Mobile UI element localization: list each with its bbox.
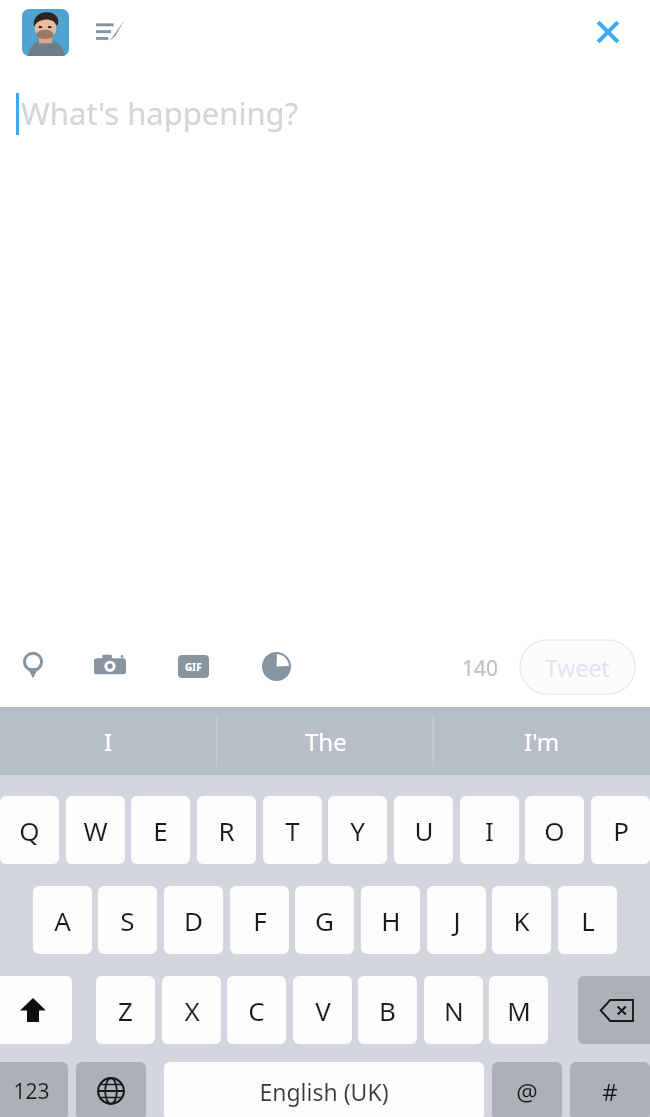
staticText: Q: [19, 813, 40, 848]
button[interactable]: R: [197, 796, 256, 864]
button[interactable]: T: [263, 796, 322, 864]
button[interactable]: I: [0, 707, 217, 775]
staticText: GIF: [185, 660, 202, 674]
button[interactable]: K: [492, 886, 551, 954]
button[interactable]: P: [591, 796, 650, 864]
button[interactable]: Close: [582, 6, 634, 58]
button[interactable]: Q: [0, 796, 59, 864]
button[interactable]: D: [164, 886, 223, 954]
button[interactable]: H: [361, 886, 420, 954]
button[interactable]: #: [570, 1062, 650, 1117]
staticText: N: [444, 993, 464, 1028]
button[interactable]: W: [66, 796, 125, 864]
staticText: W: [83, 813, 108, 848]
button[interactable]: O: [525, 796, 584, 864]
staticText: E: [153, 813, 168, 848]
button[interactable]: G: [295, 886, 354, 954]
button[interactable]: Camera: [82, 638, 138, 694]
button[interactable]: M: [489, 976, 548, 1044]
staticText: K: [513, 903, 530, 938]
staticText: G: [315, 903, 334, 938]
button[interactable]: Backspace: [578, 976, 650, 1044]
staticText: I: [485, 813, 494, 848]
staticText: 123: [13, 1077, 50, 1106]
staticText: C: [248, 993, 265, 1028]
button[interactable]: A: [33, 886, 92, 954]
button[interactable]: L: [558, 886, 617, 954]
button[interactable]: What's happening?: [21, 92, 299, 134]
button[interactable]: F: [230, 886, 289, 954]
staticText: M: [507, 993, 531, 1028]
button[interactable]: GIF: [165, 638, 221, 694]
staticText: H: [381, 903, 401, 938]
staticText: P: [613, 813, 629, 848]
staticText: F: [253, 903, 267, 938]
button[interactable]: English (UK): [164, 1062, 484, 1117]
staticText: V: [315, 993, 331, 1028]
staticText: R: [218, 813, 235, 848]
staticText: L: [581, 903, 595, 938]
staticText: O: [544, 813, 565, 848]
staticText: D: [184, 903, 203, 938]
button[interactable]: X: [162, 976, 221, 1044]
button[interactable]: C: [227, 976, 286, 1044]
staticText: 140: [462, 654, 499, 683]
staticText: Z: [118, 993, 133, 1028]
button[interactable]: Y: [328, 796, 387, 864]
button[interactable]: The: [217, 707, 434, 775]
staticText: I'm: [524, 725, 560, 758]
staticText: T: [285, 813, 300, 848]
button[interactable]: @: [492, 1062, 562, 1117]
button[interactable]: Profile: [22, 9, 69, 56]
button[interactable]: Tweet: [520, 640, 635, 694]
button[interactable]: J: [427, 886, 486, 954]
button[interactable]: Location: [5, 638, 61, 694]
staticText: A: [54, 903, 71, 938]
staticText: J: [453, 903, 461, 938]
button[interactable]: V: [293, 976, 352, 1044]
staticText: The: [305, 725, 347, 758]
button[interactable]: N: [424, 976, 483, 1044]
button[interactable]: I'm: [433, 707, 650, 775]
staticText: @: [516, 1075, 538, 1108]
button[interactable]: B: [358, 976, 417, 1044]
button[interactable]: I: [460, 796, 519, 864]
staticText: I: [104, 725, 113, 758]
button[interactable]: Shift: [0, 976, 72, 1044]
staticText: S: [120, 903, 135, 938]
staticText: Y: [350, 813, 365, 848]
staticText: X: [184, 993, 200, 1028]
button[interactable]: Z: [96, 976, 155, 1044]
button[interactable]: S: [98, 886, 157, 954]
button[interactable]: U: [394, 796, 453, 864]
staticText: Tweet: [545, 652, 610, 683]
button[interactable]: Drafts: [88, 10, 134, 56]
staticText: U: [414, 813, 434, 848]
button[interactable]: 123: [0, 1062, 68, 1117]
button[interactable]: E: [131, 796, 190, 864]
button[interactable]: Change language: [76, 1062, 146, 1117]
staticText: #: [602, 1075, 618, 1108]
button[interactable]: Poll: [248, 638, 304, 694]
staticText: English (UK): [259, 1076, 389, 1107]
staticText: B: [379, 993, 396, 1028]
